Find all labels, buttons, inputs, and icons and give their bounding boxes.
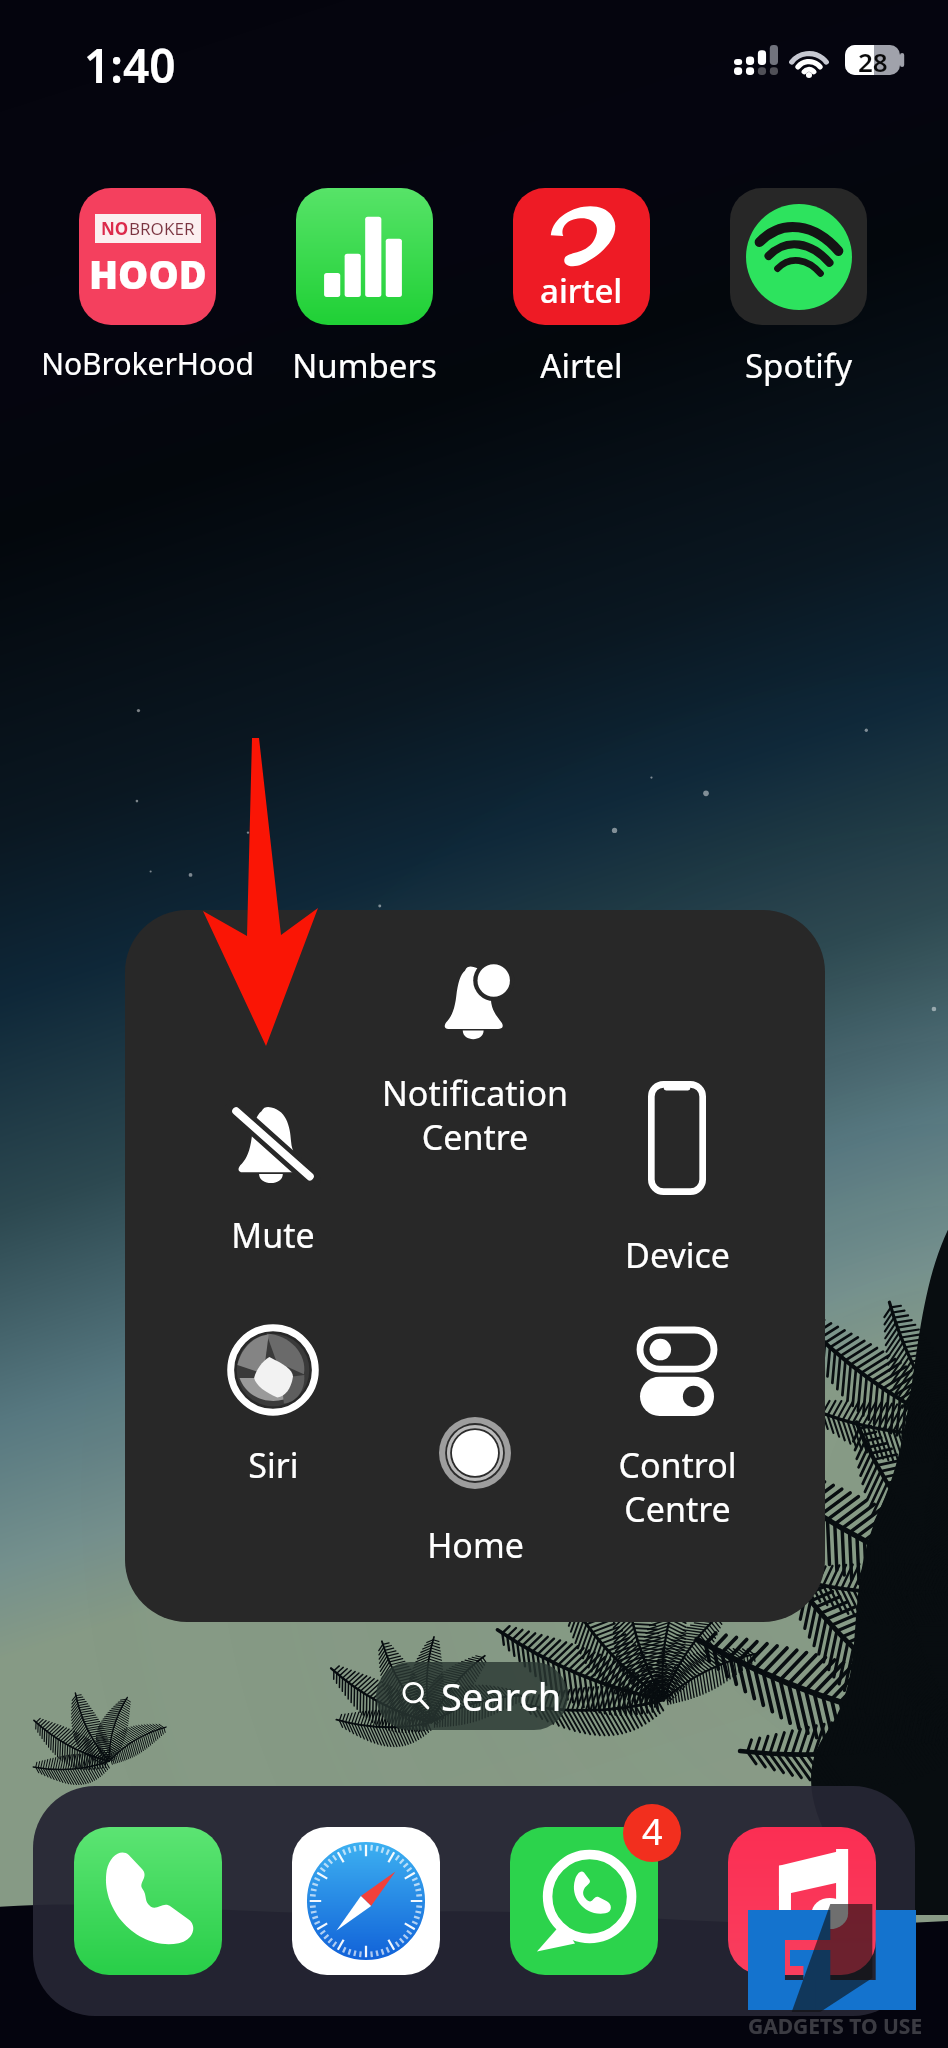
staticText: 1:40: [84, 34, 176, 97]
staticText: Numbers: [292, 343, 437, 388]
button[interactable]: Home: [350, 1410, 600, 1606]
staticText: airtel: [540, 268, 623, 313]
button[interactable]: Safari: [292, 1827, 440, 1975]
button[interactable]: Mute: [148, 1100, 398, 1296]
button[interactable]: Music: [728, 1827, 876, 1975]
button[interactable]: Search: [376, 1662, 568, 1730]
staticText: Notification Centre: [382, 1070, 568, 1160]
staticText: 4: [642, 1807, 663, 1856]
staticText: Device: [625, 1232, 730, 1278]
staticText: Control Centre: [618, 1442, 737, 1532]
button[interactable]: Numbers: [256, 188, 473, 388]
button[interactable]: Device: [552, 1070, 802, 1316]
button[interactable]: Control Centre: [552, 1330, 802, 1526]
button[interactable]: Phone: [74, 1827, 222, 1975]
staticText: Siri: [248, 1442, 299, 1488]
staticText: Spotify: [745, 343, 852, 388]
staticText: Search: [441, 1670, 562, 1722]
staticText: 28: [858, 45, 888, 74]
button[interactable]: NO: [39, 188, 256, 388]
button[interactable]: Notification Centre: [350, 958, 600, 1154]
button[interactable]: Spotify: [690, 188, 907, 388]
button[interactable]: airtel: [473, 188, 690, 388]
staticText: NO: [101, 217, 129, 240]
staticText: Airtel: [540, 343, 623, 388]
staticText: Home: [427, 1522, 524, 1568]
staticText: HOOD: [89, 248, 207, 300]
button[interactable]: Siri: [148, 1324, 398, 1526]
staticText: NoBrokerHood: [41, 343, 254, 384]
button[interactable]: WhatsApp, 4 unread: [510, 1827, 658, 1975]
staticText: BROKER: [129, 217, 195, 240]
staticText: GADGETS TO USE: [748, 2012, 923, 2041]
staticText: Mute: [231, 1212, 315, 1258]
